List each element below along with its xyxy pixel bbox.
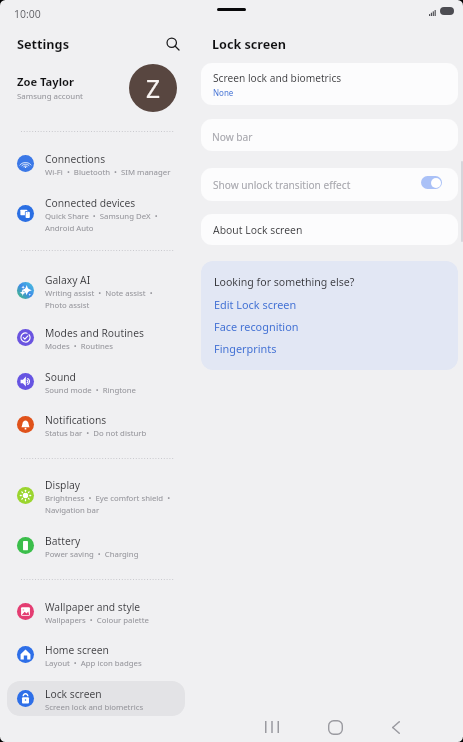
staticText: Modes • Routines (45, 341, 113, 352)
staticText: Wi-Fi • Bluetooth • SIM manager (45, 167, 171, 178)
button[interactable]: Screen lock and biometrics (201, 63, 458, 105)
staticText: None (213, 87, 234, 98)
staticText: Status bar • Do not disturb (45, 428, 147, 439)
staticText: Modes and Routines (45, 326, 144, 340)
staticText: Brightness • Eye comfort shield • Naviga… (45, 493, 171, 515)
staticText: 10:00 (14, 7, 41, 21)
button[interactable]: Recents (255, 710, 289, 742)
staticText: About Lock screen (213, 223, 303, 237)
button[interactable]: Home screen (7, 637, 185, 672)
staticText: Lock screen (212, 36, 286, 53)
button[interactable]: Notifications (7, 407, 185, 442)
staticText: Battery (45, 534, 81, 548)
staticText: Show unlock transition effect (213, 178, 423, 192)
staticText: Screen lock and biometrics (45, 702, 144, 713)
staticText: Now bar (212, 130, 253, 144)
button[interactable]: Connected devices (7, 190, 185, 236)
staticText: Sound (45, 370, 76, 384)
staticText: Quick Share • Samsung DeX • Android Auto (45, 211, 158, 233)
staticText: Galaxy AI (45, 273, 91, 287)
button[interactable]: Wallpaper and style (7, 594, 185, 629)
staticText: Settings (17, 35, 70, 52)
staticText: Wallpaper and style (45, 600, 141, 614)
button[interactable]: Connections (7, 146, 185, 181)
staticText: Display (45, 478, 81, 492)
button[interactable]: Home (318, 710, 352, 742)
staticText: Zoe Taylor (17, 74, 75, 89)
staticText: Layout • App icon badges (45, 658, 142, 669)
staticText: Connections (45, 152, 106, 166)
button[interactable]: Zoe Taylor (0, 61, 196, 115)
button[interactable] (421, 176, 442, 189)
button[interactable]: Back (379, 710, 413, 742)
button[interactable]: Fingerprints (214, 341, 277, 356)
button[interactable]: Modes and Routines (7, 320, 185, 355)
button[interactable]: Now bar (201, 119, 458, 151)
staticText: Z (146, 72, 161, 105)
staticText: Sound mode • Ringtone (45, 385, 136, 396)
button[interactable]: Galaxy AI (7, 267, 185, 313)
staticText: Notifications (45, 413, 107, 427)
staticText: Power saving • Charging (45, 549, 139, 560)
staticText: Home screen (45, 643, 109, 657)
staticText: Wallpapers • Colour palette (45, 615, 149, 626)
staticText: Screen lock and biometrics (213, 71, 342, 85)
staticText: Connected devices (45, 196, 136, 210)
button[interactable]: Battery (7, 528, 185, 563)
button[interactable]: About Lock screen (201, 214, 458, 245)
button[interactable]: Face recognition (214, 319, 299, 334)
staticText: Samsung account (17, 91, 83, 102)
button[interactable]: Edit Lock screen (214, 297, 297, 312)
staticText: Writing assist • Note assist • Photo ass… (45, 288, 153, 310)
button[interactable]: Display (7, 472, 185, 518)
button[interactable]: Show unlock transition effect (201, 168, 458, 201)
button[interactable]: Sound (7, 364, 185, 399)
button[interactable]: Search (160, 31, 186, 57)
staticText: Lock screen (45, 687, 102, 701)
button[interactable]: Lock screen (7, 681, 185, 716)
staticText: Looking for something else? (214, 275, 355, 289)
